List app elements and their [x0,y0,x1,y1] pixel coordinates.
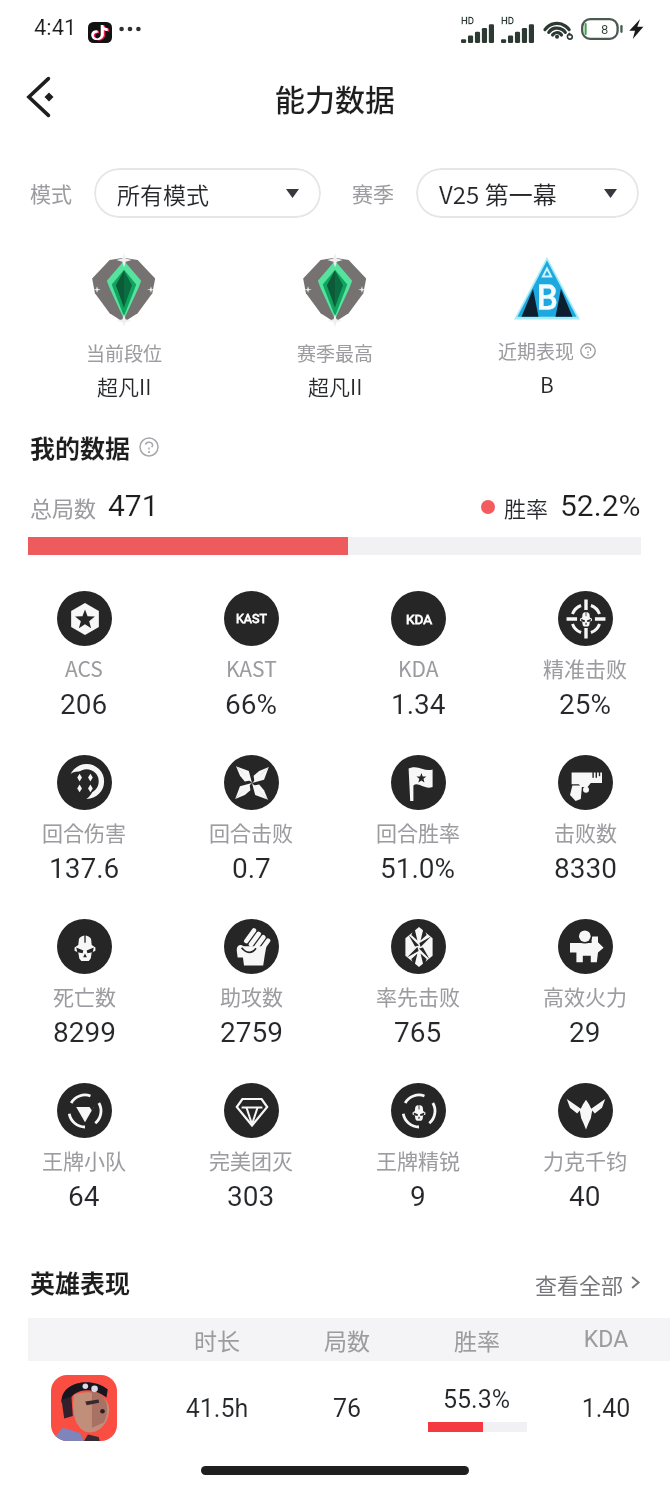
staticText: 赛季 [352,178,394,208]
staticText: 所有模式 [117,177,209,210]
staticText: 52.2% [560,488,641,523]
button[interactable]: KDA [335,591,501,721]
staticText: B [537,278,558,317]
staticText: 胜率 [412,1323,542,1356]
staticText: 击败数 [554,817,617,847]
button[interactable]: 完美团灭 [168,1083,334,1213]
staticText: 完美团灭 [209,1145,293,1175]
button[interactable]: B [457,248,637,398]
staticText: KAST [236,611,267,626]
button[interactable]: ACS [1,591,167,721]
staticText: 我的数据 [30,429,131,465]
staticText: 2759 [220,1016,283,1049]
staticText: 41.5h [152,1394,282,1423]
staticText: 模式 [30,178,72,208]
staticText: 王牌精锐 [376,1145,460,1175]
button[interactable]: 回合击败 [168,755,334,885]
staticText: 当前段位 [86,339,163,367]
button[interactable]: 41.5h [28,1361,670,1455]
staticText: 死亡数 [53,981,116,1011]
button[interactable]: 当前段位 [34,248,214,398]
staticText: 精准击败 [543,653,627,683]
staticText: HD [501,15,515,26]
staticText: 9 [410,1180,426,1213]
staticText: 51.0% [380,852,456,885]
staticText: 回合伤害 [42,817,126,847]
button[interactable]: 击败数 [502,755,668,885]
staticText: 765 [394,1016,442,1049]
button[interactable]: 死亡数 [1,919,167,1049]
button[interactable]: V25 第一幕 [416,168,639,218]
staticText: 55.3% [443,1385,511,1414]
staticText: 超凡II [97,371,152,398]
button[interactable]: 回合胜率 [335,755,501,885]
staticText: 赛季最高 [297,339,374,367]
staticText: 471 [108,488,159,523]
staticText: 8299 [53,1016,116,1049]
button[interactable]: 所有模式 [94,168,321,218]
button[interactable]: 精准击败 [502,591,668,721]
staticText: 回合击败 [209,817,293,847]
staticText: 查看全部 [535,1268,624,1296]
button[interactable]: 王牌精锐 [335,1083,501,1213]
staticText: V25 第一幕 [439,176,557,211]
staticText: KDA [542,1326,670,1353]
button[interactable]: 王牌小队 [1,1083,167,1213]
staticText: 137.6 [49,852,120,885]
staticText: 力克千钧 [543,1145,627,1175]
button[interactable]: 高效火力 [502,919,668,1049]
staticText: 时长 [152,1323,282,1356]
staticText: KDA [406,611,432,627]
staticText: KDA [398,653,439,683]
staticText: 25% [559,688,611,721]
button[interactable]: 回合伤害 [1,755,167,885]
staticText: 胜率 [504,491,549,523]
staticText: 0.7 [232,852,271,885]
button[interactable]: 助攻数 [168,919,334,1049]
staticText: 高效火力 [543,981,627,1011]
staticText: 能力数据 [275,76,395,119]
staticText: 近期表现 [498,337,575,365]
staticText: 助攻数 [220,981,283,1011]
staticText: 王牌小队 [42,1145,126,1175]
staticText: HD [461,15,475,26]
staticText: 回合胜率 [376,817,460,847]
staticText: 40 [569,1180,601,1213]
button[interactable]: 力克千钧 [502,1083,668,1213]
staticText: ACS [65,653,103,683]
staticText: 1.40 [542,1394,670,1423]
button[interactable]: 查看全部 [535,1262,642,1302]
button[interactable]: KAST [168,591,334,721]
button[interactable]: Back [12,69,68,125]
staticText: 29 [569,1016,601,1049]
staticText: 206 [60,688,108,721]
staticText: B [540,369,554,398]
staticText: 总局数 [30,491,97,523]
button[interactable]: 率先击败 [335,919,501,1049]
staticText: 英雄表现 [30,1264,131,1300]
button[interactable]: 赛季最高 [245,248,425,398]
staticText: 4:41 [34,15,77,41]
staticText: 64 [68,1180,100,1213]
staticText: 303 [227,1180,275,1213]
staticText: 超凡II [308,371,363,398]
staticText: 率先击败 [376,981,460,1011]
staticText: 66% [225,688,277,721]
staticText: 76 [282,1394,412,1423]
staticText: 1.34 [391,688,446,721]
staticText: KAST [226,653,277,683]
staticText: 局数 [282,1323,412,1356]
staticText: 8 [601,22,609,37]
staticText: 8330 [554,852,617,885]
